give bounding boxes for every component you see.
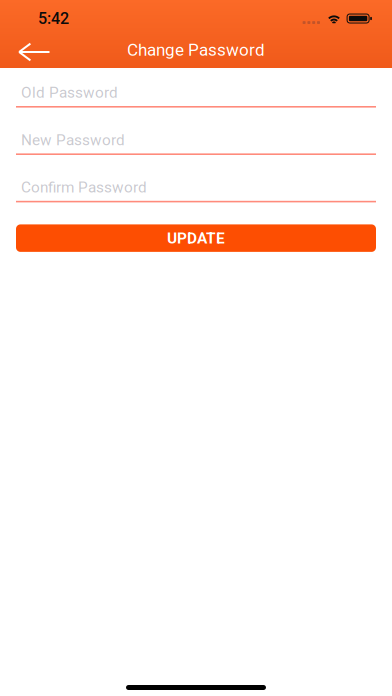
- button[interactable]: Back: [0, 32, 76, 68]
- staticText: 5:42: [38, 9, 69, 28]
- staticText: New Password: [21, 131, 125, 149]
- staticText: Confirm Password: [21, 178, 147, 196]
- staticText: Old Password: [21, 83, 118, 101]
- staticText: Change Password: [127, 40, 265, 60]
- staticText: UPDATE: [167, 229, 225, 247]
- button[interactable]: UPDATE: [16, 224, 376, 252]
